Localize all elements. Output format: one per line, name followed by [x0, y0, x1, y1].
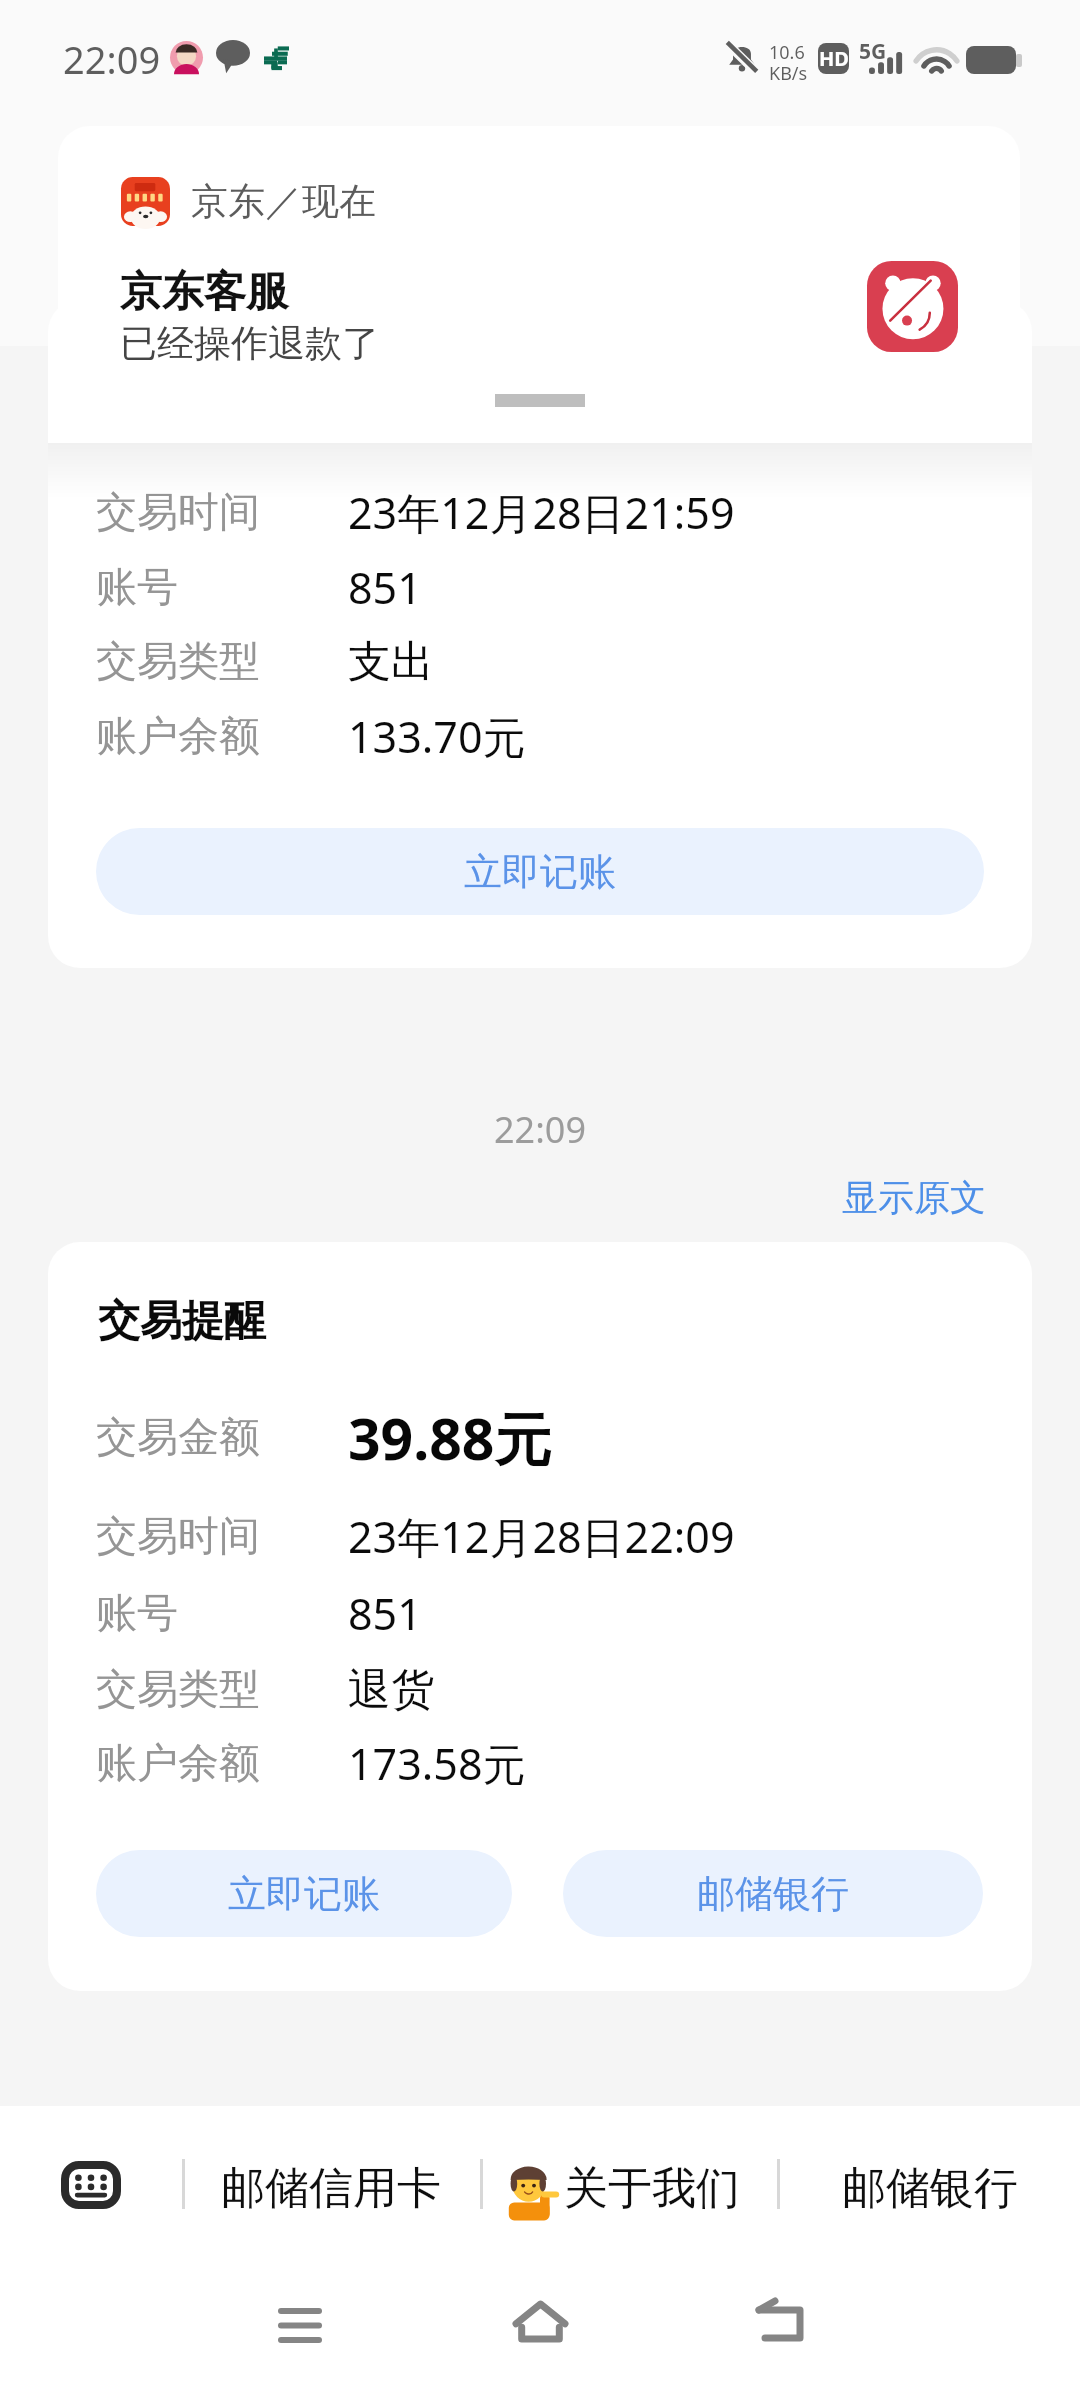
staticText: 京东客服: [120, 266, 288, 319]
button[interactable]: 关于我们: [504, 2155, 740, 2221]
staticText: 133.70元: [348, 707, 526, 766]
button[interactable]: 立即记账: [96, 828, 984, 915]
staticText: 账户余额: [96, 711, 260, 763]
staticText: 关于我们: [564, 2161, 740, 2216]
staticText: 交易时间: [96, 1511, 260, 1563]
staticText: 账号: [96, 562, 178, 614]
button[interactable]: 交易时间: [48, 300, 1032, 968]
staticText: 23年12月28日22:09: [348, 1507, 735, 1566]
staticText: 22:09: [0, 1105, 1080, 1154]
button[interactable]: 交易提醒: [48, 1242, 1032, 1991]
button[interactable]: 显示原文: [820, 1167, 1008, 1228]
button[interactable]: 立即记账: [96, 1850, 512, 1937]
staticText: 851: [348, 558, 422, 617]
staticText: 退货: [348, 1663, 434, 1717]
staticText: 邮储信用卡: [221, 2161, 441, 2216]
staticText: HD: [819, 45, 849, 72]
button[interactable]: 京东／现在: [58, 126, 1020, 443]
staticText: 已经操作退款了: [120, 320, 379, 367]
staticText: 23年12月28日21:59: [348, 483, 735, 542]
staticText: 交易时间: [96, 487, 260, 539]
staticText: 交易提醒: [98, 1295, 266, 1348]
staticText: 5G: [859, 37, 887, 66]
button[interactable]: 邮储银行: [842, 2155, 1018, 2221]
staticText: 851: [348, 1584, 422, 1643]
staticText: 京东／现在: [191, 178, 376, 225]
button[interactable]: 键盘: [50, 2152, 132, 2218]
button[interactable]: 返回: [736, 2278, 824, 2366]
button[interactable]: 邮储信用卡: [221, 2155, 441, 2221]
staticText: 账户余额: [96, 1738, 260, 1790]
staticText: 10.6 KB/s: [769, 40, 808, 86]
button[interactable]: 主页: [496, 2278, 584, 2366]
staticText: 22:09: [63, 33, 161, 85]
staticText: 账号: [96, 1588, 178, 1640]
staticText: 支出: [348, 635, 434, 689]
staticText: 立即记账: [228, 1870, 380, 1918]
button[interactable]: 邮储银行: [563, 1850, 983, 1937]
staticText: 邮储银行: [697, 1870, 849, 1918]
staticText: 交易类型: [96, 1664, 260, 1716]
other: 京东客服: [867, 261, 958, 352]
staticText: 立即记账: [464, 848, 616, 896]
staticText: 显示原文: [842, 1175, 986, 1220]
staticText: 交易金额: [96, 1412, 260, 1464]
staticText: 173.58元: [348, 1734, 526, 1793]
staticText: 39.88元: [348, 1399, 552, 1477]
button[interactable]: 最近任务: [256, 2281, 344, 2369]
staticText: 邮储银行: [842, 2161, 1018, 2216]
staticText: 交易类型: [96, 636, 260, 688]
